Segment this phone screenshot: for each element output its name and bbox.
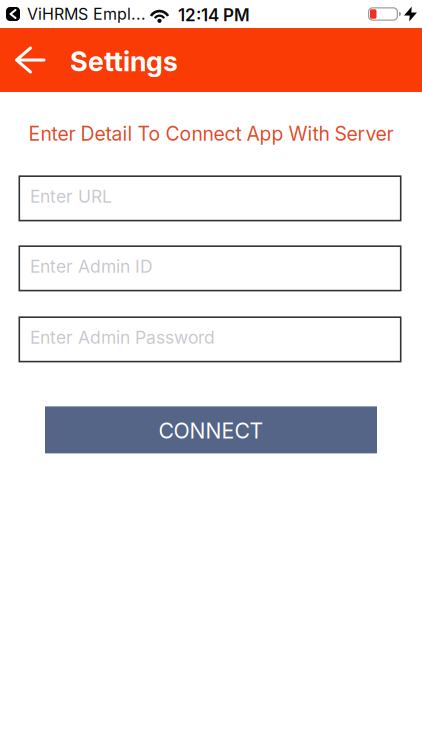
button[interactable]: Enter Admin ID — [18, 245, 401, 291]
button[interactable]: Enter Admin Password — [18, 316, 401, 362]
button[interactable]: Back — [0, 47, 54, 72]
staticText: Settings — [70, 45, 178, 78]
staticText: Enter Admin ID — [30, 256, 153, 277]
staticText: CONNECT — [158, 418, 263, 444]
button[interactable]: Back to ViHRMS Employee — [6, 7, 20, 21]
staticText: ViHRMS Empl... — [27, 4, 146, 24]
staticText: Enter Detail To Connect App With Server — [28, 122, 393, 145]
staticText: Enter Admin Password — [30, 327, 215, 348]
button[interactable]: Enter URL — [18, 175, 401, 221]
staticText: 12:14 PM — [178, 5, 250, 25]
staticText: Enter URL — [30, 186, 112, 207]
button[interactable]: CONNECT — [45, 406, 377, 453]
